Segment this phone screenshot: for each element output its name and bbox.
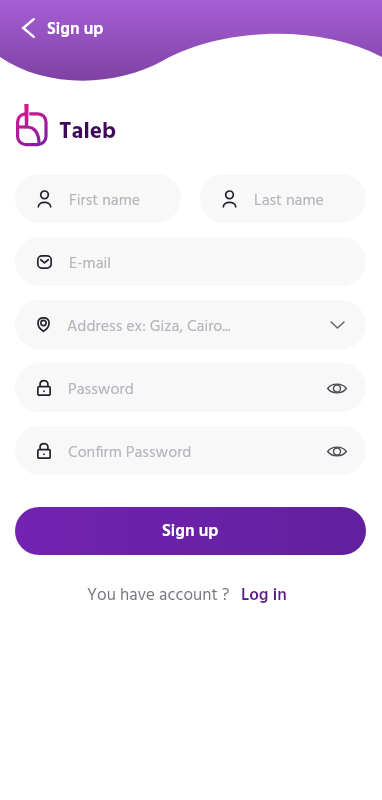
button[interactable]: Last name [200,174,366,223]
staticText: Password [68,377,320,403]
button[interactable]: Back [14,14,42,42]
staticText: Sign up [162,518,219,545]
button[interactable]: Address ex: Giza, Cairo... [15,300,366,349]
button[interactable]: Log in [241,582,287,609]
button[interactable]: Sign up [15,507,366,555]
staticText: Taleb [59,114,117,151]
button[interactable]: Expand [324,312,350,338]
staticText: E-mail [69,251,350,277]
button[interactable]: Password [15,363,366,412]
button[interactable]: Show password [324,438,350,464]
staticText: First name [69,188,165,214]
staticText: Address ex: Giza, Cairo... [67,314,320,340]
staticText: You have account ? [87,582,230,609]
staticText: Log in [241,582,287,609]
button[interactable]: Confirm Password [15,426,366,475]
button[interactable]: First name [15,174,181,223]
staticText: Last name [254,188,350,214]
staticText: Confirm Password [68,440,320,466]
button[interactable]: Show password [324,375,350,401]
button[interactable]: E-mail [15,237,366,286]
staticText: Sign up [47,16,104,43]
